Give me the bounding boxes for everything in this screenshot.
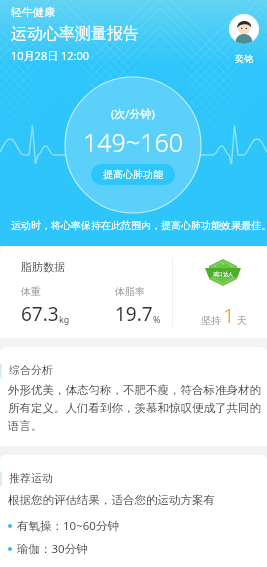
staticText: 19.7 xyxy=(115,301,153,327)
staticText: 坚持 xyxy=(201,314,221,327)
staticText: kg xyxy=(59,313,70,325)
staticText: 天 xyxy=(237,314,247,327)
staticText: 体脂率 xyxy=(115,285,145,298)
button[interactable]: User profile xyxy=(229,14,259,44)
staticText: 10月28日 12:00 xyxy=(11,48,90,63)
staticText: (次/分钟) xyxy=(111,106,155,121)
staticText: 67.3 xyxy=(21,301,59,327)
staticText: 1 xyxy=(223,302,235,329)
staticText: 推荐运动 xyxy=(9,471,53,485)
staticText: 149~160 xyxy=(83,125,183,159)
staticText: 综合分析 xyxy=(9,363,53,377)
staticText: 根据您的评估结果，适合您的运动方案有 xyxy=(8,493,215,507)
staticText: % xyxy=(153,313,161,325)
staticText: 戒口达人 xyxy=(213,271,233,277)
staticText: 瑜伽：30分钟 xyxy=(17,541,88,557)
staticText: 有氧操：10~60分钟 xyxy=(17,518,119,534)
staticText: 运动时，将心率保持在此范围内，提高心肺功能效果最佳。 xyxy=(11,219,267,232)
staticText: 外形优美，体态匀称，不肥不瘦，符合标准身材的所有定义。人们看到你，羡慕和惊叹便成… xyxy=(8,383,267,434)
button[interactable]: 有氧操：10~60分钟 xyxy=(8,518,119,534)
button[interactable]: 瑜伽：30分钟 xyxy=(8,541,88,557)
staticText: 脂肪数据 xyxy=(21,260,65,274)
staticText: 轻牛健康 xyxy=(11,5,55,19)
staticText: 提高心肺功能 xyxy=(103,168,163,181)
staticText: 奕铭 xyxy=(235,53,253,64)
staticText: 体重 xyxy=(21,285,41,298)
staticText: 运动心率测量报告 xyxy=(11,24,139,44)
